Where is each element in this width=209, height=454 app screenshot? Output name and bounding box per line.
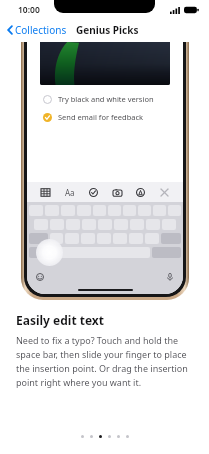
- button[interactable]: Table: [39, 186, 52, 199]
- staticText: Need to fix a typo? Touch and hold the s…: [16, 334, 193, 388]
- button[interactable]: Dictation: [165, 272, 175, 282]
- button[interactable]: Checklist: [87, 186, 100, 199]
- button[interactable]: [108, 435, 111, 438]
- staticText: Easily edit text: [16, 312, 105, 328]
- button[interactable]: Collections: [0, 20, 73, 40]
- button[interactable]: Camera: [111, 186, 124, 199]
- button[interactable]: [55, 247, 150, 258]
- button[interactable]: [126, 435, 129, 438]
- button[interactable]: Markup: [134, 186, 147, 199]
- button[interactable]: Emoji: [35, 272, 45, 282]
- button[interactable]: Aa: [63, 185, 77, 200]
- button[interactable]: [50, 233, 63, 244]
- staticText: Aa: [65, 187, 75, 198]
- button[interactable]: [90, 435, 93, 438]
- button[interactable]: [81, 435, 84, 438]
- button[interactable]: Close: [158, 186, 171, 199]
- button[interactable]: [29, 233, 48, 244]
- staticText: Send email for feedback: [58, 112, 144, 122]
- button[interactable]: Send email for feedback: [27, 111, 183, 123]
- button[interactable]: [117, 435, 120, 438]
- button[interactable]: [29, 247, 53, 258]
- staticText: 10:00: [18, 4, 40, 16]
- staticText: Try black and white version: [58, 94, 154, 104]
- staticText: Collections: [15, 23, 67, 37]
- button[interactable]: Try black and white version: [27, 93, 183, 105]
- button[interactable]: [99, 435, 102, 438]
- staticText: Genius Picks: [76, 23, 139, 37]
